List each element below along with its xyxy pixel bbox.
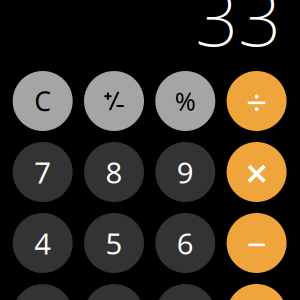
button[interactable]: 4 xyxy=(13,213,73,273)
button[interactable]: 8 xyxy=(84,142,144,202)
staticText: 9 xyxy=(177,152,194,191)
button[interactable]: 6 xyxy=(155,213,215,273)
button[interactable]: % xyxy=(155,71,215,131)
staticText: % xyxy=(175,84,196,118)
staticText: C xyxy=(34,83,51,119)
button[interactable]: Subtract xyxy=(227,213,287,273)
button[interactable]: 3 xyxy=(155,284,215,300)
button[interactable]: Divide xyxy=(227,71,287,131)
button[interactable]: Multiply xyxy=(227,142,287,202)
button[interactable]: 2 xyxy=(84,284,144,300)
button[interactable]: C xyxy=(13,71,73,131)
staticText: 33 xyxy=(195,0,281,67)
staticText: 7 xyxy=(34,152,51,191)
button[interactable]: 7 xyxy=(13,142,73,202)
button[interactable]: 5 xyxy=(84,213,144,273)
staticText: 5 xyxy=(105,223,122,262)
button[interactable]: 9 xyxy=(155,142,215,202)
staticText: 4 xyxy=(34,223,51,262)
staticText: 8 xyxy=(105,152,122,191)
button[interactable]: 1 xyxy=(13,284,73,300)
button[interactable]: Toggle sign xyxy=(84,71,144,131)
button[interactable]: Add xyxy=(227,284,287,300)
staticText: 6 xyxy=(177,223,194,262)
